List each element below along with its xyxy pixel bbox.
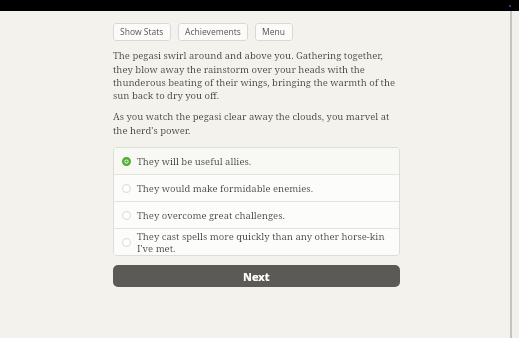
- button[interactable]: Achievements: [178, 23, 248, 41]
- staticText: They overcome great challenges.: [137, 209, 285, 222]
- staticText: Show Stats: [120, 26, 164, 38]
- button[interactable]: They would make formidable enemies.: [114, 175, 399, 201]
- staticText: Achievements: [185, 26, 241, 38]
- button[interactable]: Next: [113, 265, 400, 287]
- button[interactable]: Menu: [255, 23, 293, 41]
- button[interactable]: They overcome great challenges.: [114, 202, 399, 228]
- staticText: They would make formidable enemies.: [137, 182, 314, 195]
- staticText: As you watch the pegasi clear away the c…: [113, 110, 400, 136]
- staticText: The pegasi swirl around and above you. G…: [113, 49, 400, 101]
- button[interactable]: They will be useful allies.: [114, 148, 399, 174]
- staticText: They will be useful allies.: [137, 155, 252, 168]
- button[interactable]: They cast spells more quickly than any o…: [114, 229, 399, 255]
- staticText: Next: [243, 269, 270, 284]
- staticText: Menu: [262, 26, 286, 38]
- button[interactable]: Show Stats: [113, 23, 171, 41]
- staticText: They cast spells more quickly than any o…: [137, 230, 391, 254]
